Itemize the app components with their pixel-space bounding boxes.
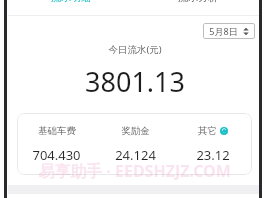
other: Change date	[243, 27, 249, 36]
staticText: 流水明细	[51, 0, 91, 4]
staticText: 5月8日	[209, 25, 238, 37]
staticText: 奖励金	[121, 125, 150, 137]
button[interactable]: 基础车费	[17, 125, 96, 164]
staticText: 3801.13	[85, 63, 185, 100]
staticText: 24.124	[115, 146, 156, 164]
staticText: 基础车费	[38, 125, 76, 137]
staticText: 其它	[198, 125, 217, 137]
staticText: 今日流水(元)	[108, 43, 162, 56]
button[interactable]: 奖励金	[96, 125, 174, 164]
button[interactable]: 5月8日	[203, 23, 255, 39]
button[interactable]: 流水明细	[8, 0, 134, 6]
button[interactable]: 流水分析	[134, 0, 261, 4]
staticText: 23.12	[196, 146, 230, 164]
button[interactable]: 其它	[174, 125, 252, 164]
other: More info	[220, 127, 228, 135]
staticText: 704.430	[32, 146, 81, 164]
staticText: 流水分析	[178, 0, 218, 4]
staticText: 易享助手 · EEDSHZJZ.COM	[38, 160, 231, 182]
